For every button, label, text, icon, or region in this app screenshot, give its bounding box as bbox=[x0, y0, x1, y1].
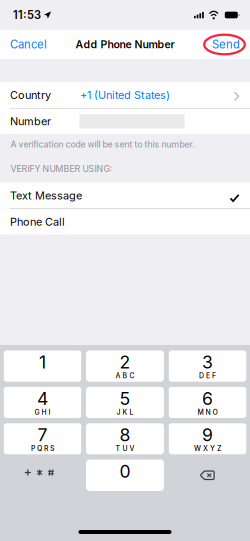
button[interactable]: 9 bbox=[168, 423, 246, 455]
staticText: Phone Call bbox=[10, 215, 65, 228]
staticText: 3 bbox=[202, 351, 213, 373]
button[interactable]: Cancel bbox=[0, 30, 57, 58]
staticText: A verification code will be sent to this… bbox=[10, 139, 194, 149]
button[interactable]: 8 bbox=[86, 423, 164, 455]
staticText: 5 bbox=[119, 388, 130, 409]
staticText: W X Y Z bbox=[194, 444, 221, 453]
staticText: Send bbox=[212, 38, 240, 51]
button[interactable]: 1 bbox=[3, 350, 81, 382]
staticText: 1 bbox=[39, 351, 46, 373]
staticText: 7 bbox=[37, 424, 47, 445]
staticText: M N O bbox=[197, 408, 217, 416]
staticText: +1 (United States) bbox=[80, 88, 170, 102]
button[interactable]: 4 bbox=[3, 387, 81, 418]
staticText: Country bbox=[10, 88, 51, 102]
staticText: G H I bbox=[34, 408, 50, 416]
staticText: Cancel bbox=[10, 38, 47, 51]
button[interactable]: Delete bbox=[168, 460, 246, 491]
button[interactable]: 0 bbox=[86, 460, 164, 491]
staticText: P Q R S bbox=[31, 444, 54, 453]
button[interactable]: 2 bbox=[86, 350, 164, 382]
staticText: D E F bbox=[199, 372, 216, 380]
button[interactable]: 6 bbox=[168, 387, 246, 418]
staticText: 2 bbox=[119, 351, 130, 373]
staticText: J K L bbox=[116, 408, 133, 416]
staticText: A B C bbox=[115, 372, 134, 380]
button[interactable]: Phone Call bbox=[0, 209, 250, 234]
staticText: 4 bbox=[37, 388, 48, 409]
staticText: 9 bbox=[202, 424, 213, 445]
staticText: 11:53 bbox=[13, 8, 41, 22]
staticText: VERIFY NUMBER USING: bbox=[10, 163, 111, 174]
button[interactable]: Symbols bbox=[3, 460, 81, 491]
staticText: 8 bbox=[119, 424, 130, 445]
staticText: 0 bbox=[119, 461, 130, 482]
button[interactable]: Send bbox=[202, 30, 250, 58]
button[interactable]: 3 bbox=[168, 350, 246, 382]
button[interactable]: 7 bbox=[3, 423, 81, 455]
staticText: Number bbox=[10, 115, 51, 128]
staticText: T U V bbox=[115, 444, 134, 453]
staticText: Text Message bbox=[10, 189, 82, 202]
button[interactable]: Country bbox=[0, 82, 250, 108]
button[interactable]: Text Message bbox=[0, 182, 250, 208]
staticText: 6 bbox=[202, 388, 213, 409]
staticText: Add Phone Number bbox=[75, 38, 174, 51]
button[interactable]: 5 bbox=[86, 387, 164, 418]
